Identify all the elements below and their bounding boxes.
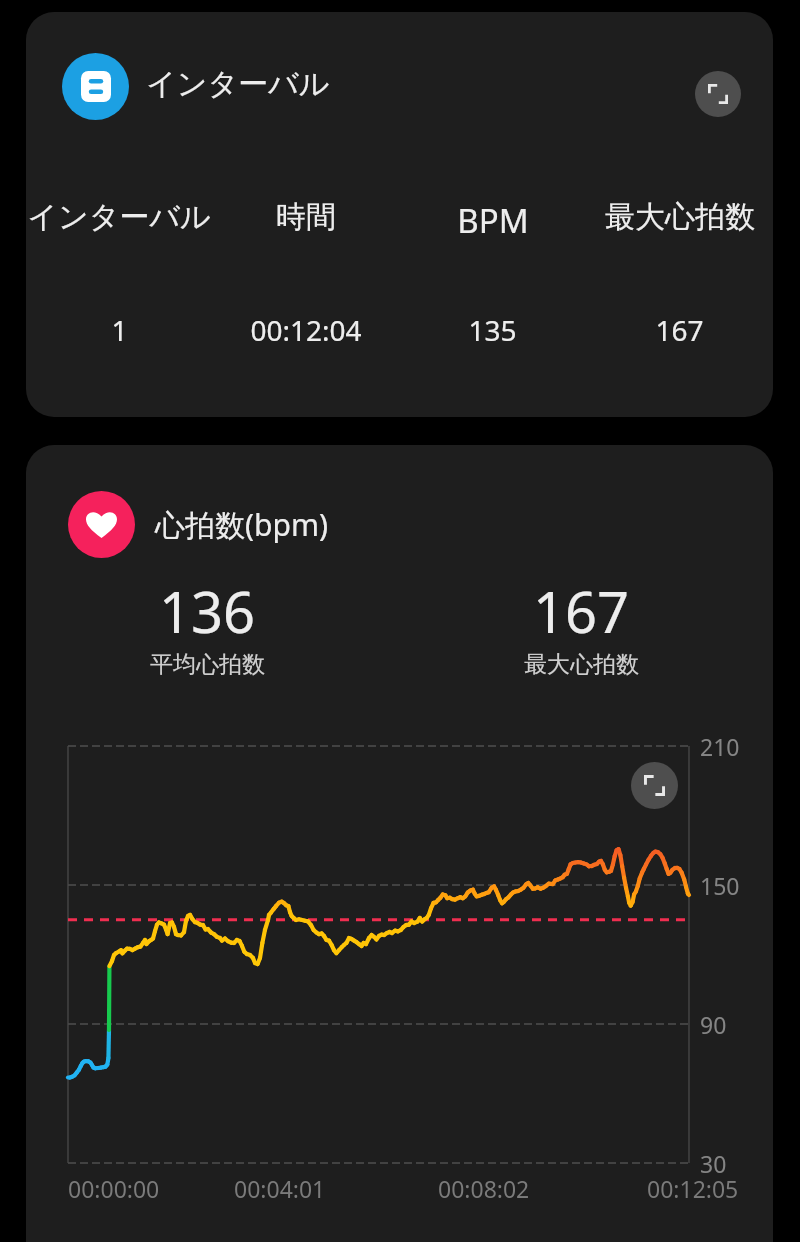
staticText: 最大心拍数: [605, 198, 755, 236]
staticText: 136: [159, 573, 256, 649]
staticText: 150: [700, 870, 740, 901]
staticText: インターバル: [27, 198, 211, 236]
staticText: 167: [533, 573, 630, 649]
staticText: 90: [700, 1009, 727, 1040]
staticText: 心拍数(bpm): [155, 504, 328, 545]
staticText: 1: [111, 311, 128, 349]
staticText: 平均心拍数: [150, 650, 265, 679]
staticText: 00:00:00: [68, 1173, 160, 1204]
button[interactable]: インターバル: [26, 50, 773, 117]
staticText: BPM: [457, 198, 529, 243]
staticText: 135: [468, 311, 517, 349]
button[interactable]: 1: [26, 308, 773, 352]
button[interactable]: 心拍数(bpm): [26, 491, 773, 558]
staticText: 210: [700, 731, 740, 762]
staticText: 時間: [276, 198, 336, 236]
staticText: インターバル: [146, 65, 330, 103]
button[interactable]: Expand interval table: [695, 71, 741, 117]
staticText: 00:08:02: [438, 1173, 530, 1204]
staticText: 最大心拍数: [524, 650, 639, 679]
staticText: 00:12:05: [647, 1173, 739, 1204]
staticText: 30: [700, 1148, 727, 1179]
staticText: 00:12:04: [250, 311, 362, 349]
button[interactable]: Expand heart rate chart: [631, 762, 678, 809]
staticText: 00:04:01: [234, 1173, 326, 1204]
staticText: 167: [655, 311, 704, 349]
